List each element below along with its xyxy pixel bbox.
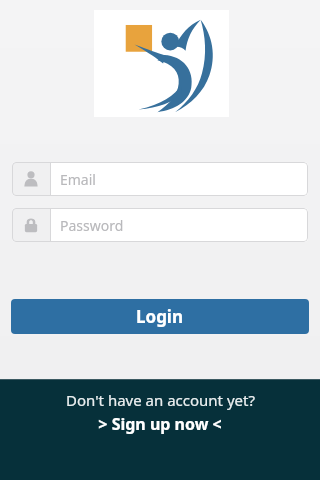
staticText: Login — [136, 305, 184, 328]
button[interactable]: Don't have an account yet? — [0, 380, 320, 435]
staticText: Don't have an account yet? — [66, 390, 255, 410]
staticText: Email — [60, 170, 96, 189]
button[interactable]: Login — [11, 299, 309, 334]
staticText: > Sign up now < — [98, 413, 222, 435]
staticText: Password — [60, 216, 124, 235]
button[interactable]: Email — [12, 162, 308, 196]
button[interactable]: Password — [12, 208, 308, 242]
